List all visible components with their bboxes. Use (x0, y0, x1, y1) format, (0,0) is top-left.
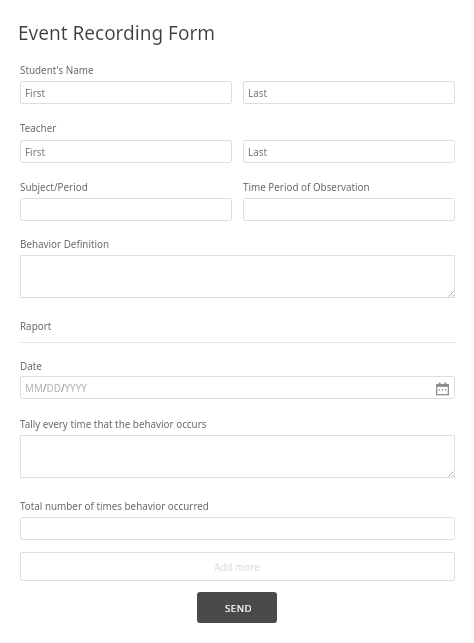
staticText: First (25, 86, 45, 99)
staticText: Teacher (20, 121, 57, 134)
staticText: Event Recording Form (18, 20, 216, 46)
staticText: Date (20, 359, 42, 372)
button[interactable]: Add more (20, 552, 455, 581)
button[interactable]: Behavior Definition (20, 255, 455, 298)
staticText: MM/DD/YYYY (25, 381, 87, 394)
button[interactable]: Subject/Period (20, 198, 232, 221)
staticText: Last (248, 86, 267, 99)
button[interactable]: Total number of times behavior occurred (20, 517, 455, 540)
button[interactable]: Last (243, 140, 455, 163)
button[interactable]: Time Period of Observation (243, 198, 455, 221)
button[interactable]: Tally every time that the behavior occur… (20, 435, 455, 478)
button[interactable]: SEND (197, 592, 277, 623)
staticText: Total number of times behavior occurred (20, 499, 209, 512)
button[interactable]: First (20, 81, 232, 104)
staticText: SEND (225, 602, 253, 615)
staticText: Raport (20, 319, 52, 332)
staticText: Student's Name (20, 63, 94, 76)
staticText: Subject/Period (20, 180, 88, 193)
button[interactable]: First (20, 140, 232, 163)
staticText: Last (248, 145, 267, 158)
staticText: Time Period of Observation (243, 180, 370, 193)
button[interactable]: Last (243, 81, 455, 104)
staticText: Behavior Definition (20, 237, 110, 250)
button[interactable]: Date (20, 376, 455, 399)
staticText: First (25, 145, 45, 158)
staticText: Add more (214, 560, 260, 573)
button[interactable]: Show date picker (436, 382, 449, 396)
staticText: Tally every time that the behavior occur… (20, 417, 207, 430)
